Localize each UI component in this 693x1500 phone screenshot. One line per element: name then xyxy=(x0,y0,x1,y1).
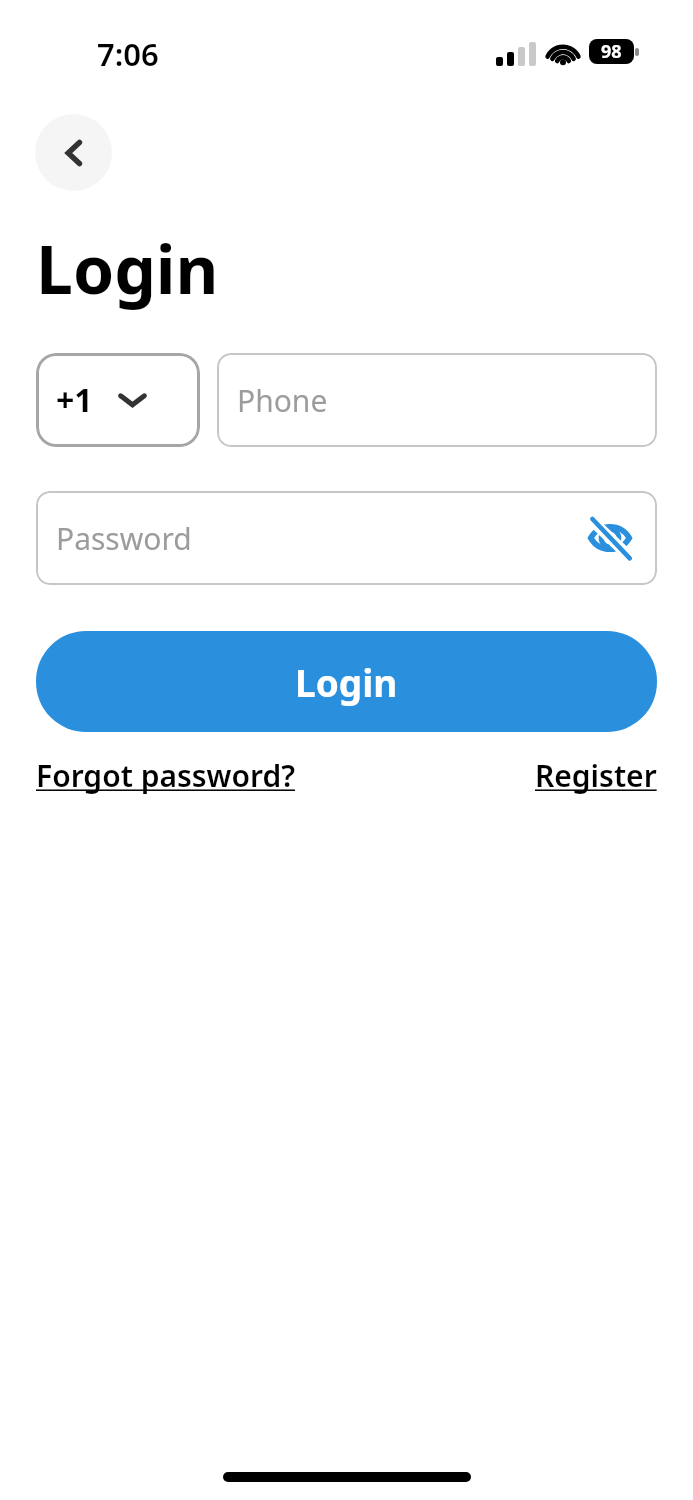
button[interactable]: Back xyxy=(35,114,112,191)
staticText: Phone xyxy=(237,380,328,421)
staticText: 98 xyxy=(601,39,622,64)
staticText: Register xyxy=(535,755,657,796)
button[interactable]: Password xyxy=(36,491,657,585)
staticText: Login xyxy=(295,657,398,707)
button[interactable]: +1 xyxy=(36,353,200,447)
button[interactable]: Phone xyxy=(217,353,657,447)
button[interactable]: Register xyxy=(535,755,657,796)
staticText: +1 xyxy=(56,378,93,422)
staticText: Login xyxy=(36,223,219,313)
button[interactable]: Forgot password? xyxy=(36,755,295,796)
button[interactable]: Show password xyxy=(583,511,637,565)
staticText: Forgot password? xyxy=(36,755,295,796)
staticText: 7:06 xyxy=(97,33,159,75)
staticText: Password xyxy=(56,518,192,559)
button[interactable]: Login xyxy=(36,631,657,732)
